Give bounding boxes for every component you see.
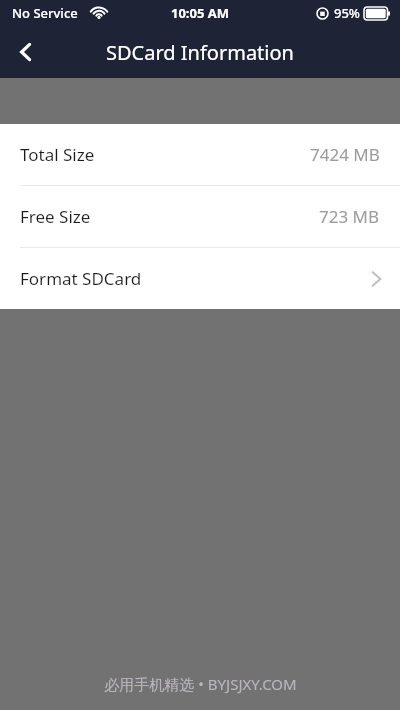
button[interactable]: Back (0, 26, 52, 78)
button[interactable]: Format SDCard (0, 248, 400, 309)
staticText: SDCard Information (106, 39, 294, 66)
staticText: Total Size (20, 143, 95, 166)
button[interactable]: Total Size (0, 124, 400, 186)
button[interactable]: Free Size (0, 186, 400, 248)
staticText: No Service (12, 4, 78, 22)
staticText: 7424 MB (310, 143, 380, 166)
staticText: 723 MB (319, 205, 380, 228)
staticText: 10:05 AM (171, 4, 230, 22)
staticText: Format SDCard (20, 267, 142, 290)
staticText: 必用手机精选 • BYJSJXY.COM (104, 674, 297, 694)
staticText: Free Size (20, 205, 91, 228)
staticText: 95% (334, 4, 360, 22)
